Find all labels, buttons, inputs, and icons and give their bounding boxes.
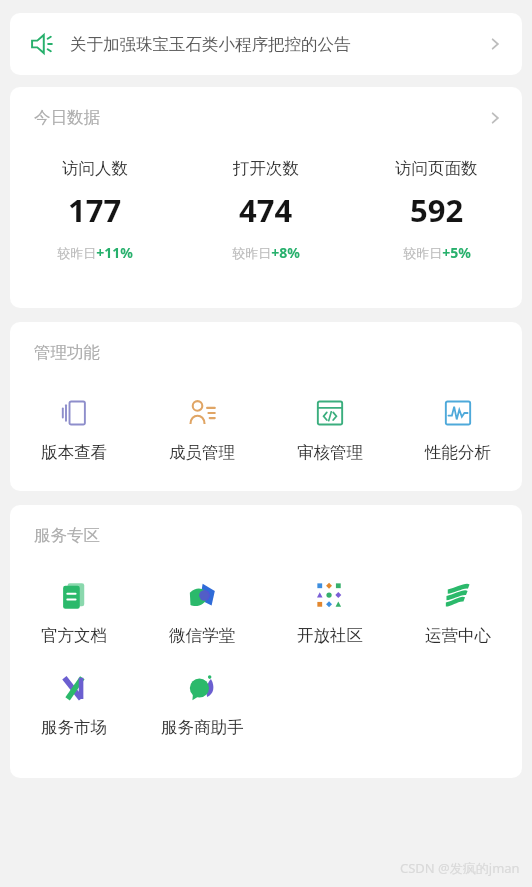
staticText: 服务市场 — [41, 717, 107, 738]
button[interactable]: 访问页面数 — [351, 158, 522, 262]
button[interactable]: 打开次数 — [180, 158, 351, 262]
staticText: 版本查看 — [41, 442, 107, 463]
staticText: 审核管理 — [297, 442, 363, 463]
button[interactable]: 性能分析 — [394, 397, 522, 463]
staticText: 性能分析 — [425, 442, 491, 463]
staticText: 运营中心 — [425, 625, 491, 646]
button[interactable]: 版本查看 — [10, 397, 138, 463]
button[interactable]: 审核管理 — [266, 397, 394, 463]
staticText: 微信学堂 — [169, 625, 235, 646]
staticText: 管理功能 — [34, 342, 100, 363]
button[interactable]: 今日数据 — [10, 87, 522, 132]
staticText: 成员管理 — [169, 442, 235, 463]
staticText: 较昨日+5% — [403, 243, 471, 262]
button[interactable]: 访问人数 — [10, 158, 180, 262]
staticText: 今日数据 — [34, 107, 486, 128]
staticText: 474 — [239, 189, 293, 231]
staticText: 访问人数 — [62, 158, 128, 179]
staticText: 访问页面数 — [395, 158, 478, 179]
staticText: 开放社区 — [297, 625, 363, 646]
staticText: 177 — [68, 189, 122, 231]
button[interactable]: 成员管理 — [138, 397, 266, 463]
other: More — [486, 35, 504, 53]
staticText: 较昨日+8% — [232, 243, 300, 262]
staticText: 592 — [410, 189, 464, 231]
staticText: 关于加强珠宝玉石类小程序把控的公告 — [70, 34, 486, 55]
staticText: 服务商助手 — [161, 717, 244, 738]
button[interactable]: 开放社区 — [266, 580, 394, 646]
button[interactable]: 关于加强珠宝玉石类小程序把控的公告 — [10, 13, 522, 75]
button[interactable]: 服务市场 — [10, 672, 138, 738]
button[interactable]: 官方文档 — [10, 580, 138, 646]
staticText: 较昨日+11% — [57, 243, 133, 262]
button[interactable]: 服务商助手 — [138, 672, 266, 738]
button[interactable]: 微信学堂 — [138, 580, 266, 646]
staticText: 打开次数 — [233, 158, 299, 179]
staticText: 服务专区 — [34, 525, 100, 546]
button[interactable]: 运营中心 — [394, 580, 522, 646]
staticText: CSDN @发疯的jman — [400, 859, 520, 877]
staticText: 官方文档 — [41, 625, 107, 646]
